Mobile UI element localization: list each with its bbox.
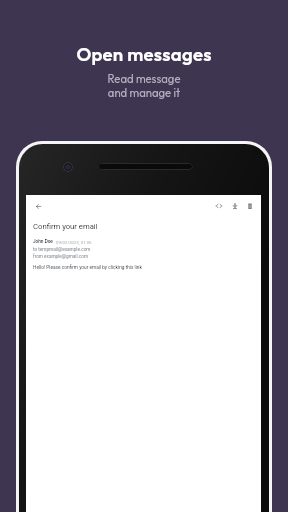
staticText: Hello! Please confirm your email by clic… (33, 265, 142, 271)
staticText: 09/02/2022, 01:05 (56, 240, 92, 245)
button[interactable]: View source (212, 199, 226, 213)
staticText: Confirm your email (33, 222, 98, 231)
button[interactable]: Delete (243, 199, 257, 213)
staticText: to tempmail@example.com (33, 247, 91, 253)
staticText: John Doe (33, 239, 53, 245)
staticText: Open messages (0, 42, 288, 65)
button[interactable]: Back (31, 199, 45, 213)
staticText: from example@gmail.com (33, 254, 89, 260)
staticText: Read message and manage it (0, 72, 288, 100)
button[interactable]: Download (228, 199, 242, 213)
